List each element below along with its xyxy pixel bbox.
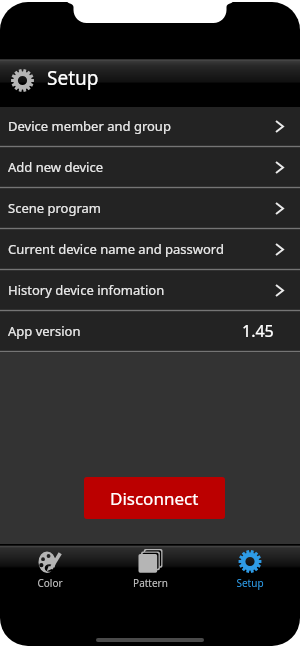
button[interactable]: Disconnect [84, 477, 225, 519]
staticText: Scene program [8, 199, 101, 217]
staticText: Pattern [133, 576, 168, 590]
staticText: History device infomation [8, 281, 165, 299]
staticText: Current device name and password [8, 240, 224, 258]
button[interactable]: Device member and group [0, 107, 300, 145]
staticText: App version [8, 322, 81, 340]
staticText: Setup [47, 65, 99, 91]
staticText: 1.45 [242, 320, 274, 342]
button[interactable]: Scene program [0, 189, 300, 227]
button[interactable]: Color [0, 544, 100, 600]
staticText: Setup [236, 576, 264, 590]
staticText: Add new device [8, 158, 103, 176]
button[interactable]: Current device name and password [0, 230, 300, 268]
button[interactable]: App version [0, 312, 300, 350]
button[interactable]: Setup [200, 544, 300, 600]
staticText: Disconnect [110, 487, 199, 510]
button[interactable]: Add new device [0, 148, 300, 186]
staticText: Device member and group [8, 117, 171, 135]
staticText: Color [37, 576, 63, 590]
button[interactable]: Pattern [100, 544, 200, 600]
button[interactable]: History device infomation [0, 271, 300, 309]
